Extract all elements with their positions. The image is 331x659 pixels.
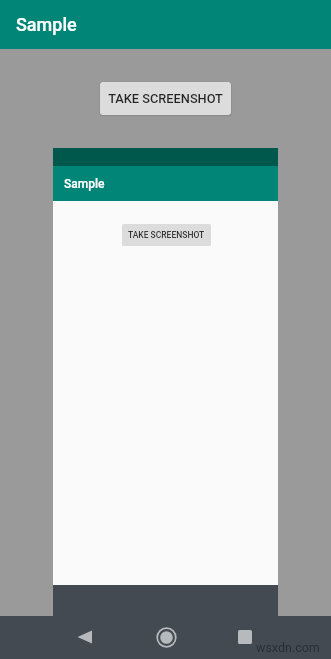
button[interactable]: Home [150,621,182,653]
staticText: TAKE SCREENSHOT [128,230,205,240]
staticText: Sample [64,177,105,191]
button[interactable]: Recent apps [229,621,261,653]
button[interactable]: TAKE SCREENSHOT [100,82,231,115]
staticText: TAKE SCREENSHOT [108,91,223,106]
staticText: wsxdn.com [256,640,320,655]
staticText: Sample [16,14,77,35]
button[interactable]: TAKE SCREENSHOT [122,224,211,246]
button[interactable]: Back [69,621,101,653]
